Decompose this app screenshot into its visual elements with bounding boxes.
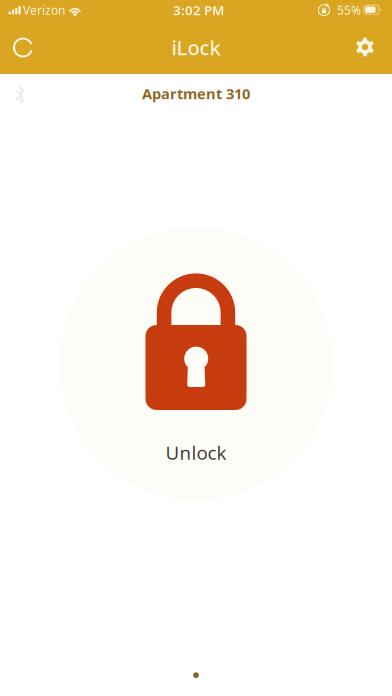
staticText: Apartment 310 xyxy=(142,84,250,103)
staticText: iLock xyxy=(171,34,220,61)
button[interactable]: Refresh xyxy=(1,25,45,69)
staticText: Unlock xyxy=(165,440,226,465)
staticText: 55% xyxy=(337,2,361,18)
staticText: Verizon xyxy=(23,2,65,18)
staticText: 3:02 PM xyxy=(173,1,224,19)
button[interactable]: Settings xyxy=(343,25,387,69)
button[interactable]: Unlock xyxy=(59,227,332,500)
